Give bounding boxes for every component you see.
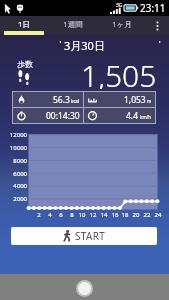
button[interactable]: Home	[76, 280, 93, 297]
staticText: 6000	[0, 170, 27, 178]
staticText: 12000	[0, 131, 27, 139]
staticText: kcal	[71, 98, 80, 104]
staticText: 10	[76, 211, 88, 219]
staticText: 18	[119, 211, 131, 219]
button[interactable]: 1ヶ月	[97, 16, 146, 35]
staticText: 2	[33, 211, 45, 219]
staticText: 1,053	[124, 94, 146, 106]
staticText: 8000	[0, 157, 27, 165]
button[interactable]: 1週間	[48, 16, 97, 35]
staticText: 8	[66, 211, 78, 219]
staticText: m	[147, 98, 152, 104]
staticText: 00:14:30	[46, 110, 80, 122]
staticText: 4000	[0, 182, 27, 190]
staticText: 歩数	[17, 59, 33, 69]
staticText: 1ヶ月	[112, 19, 132, 29]
staticText: 14	[98, 211, 110, 219]
staticText: 23:11	[140, 1, 166, 15]
staticText: 24	[152, 211, 164, 219]
staticText: START	[75, 229, 106, 243]
staticText: 2000	[0, 195, 27, 203]
staticText: 10000	[0, 144, 27, 152]
staticText: 22	[141, 211, 153, 219]
staticText: 1週間	[63, 19, 83, 29]
button[interactable]: 00:14:30	[16, 108, 80, 123]
staticText: 20	[130, 211, 142, 219]
staticText: 6	[55, 211, 67, 219]
button[interactable]: Previous day	[55, 37, 64, 46]
button[interactable]: Next day	[155, 37, 164, 46]
button[interactable]: 1,053	[87, 92, 152, 107]
button[interactable]: 4.4	[87, 108, 152, 123]
staticText: 4	[44, 211, 56, 219]
button[interactable]: 56.3	[16, 92, 80, 107]
staticText: 16	[109, 211, 121, 219]
staticText: 3G	[116, 2, 123, 9]
staticText: 4.4	[126, 110, 139, 122]
staticText: 12	[87, 211, 99, 219]
staticText: 1日	[18, 19, 30, 29]
staticText: 3月30日	[64, 38, 105, 53]
staticText: km/h	[140, 114, 152, 120]
button[interactable]: START	[11, 227, 157, 245]
staticText: 56.3	[53, 94, 70, 106]
staticText: 1,505	[81, 55, 157, 89]
button[interactable]: 1日	[0, 16, 48, 35]
button[interactable]: More options	[146, 16, 169, 35]
